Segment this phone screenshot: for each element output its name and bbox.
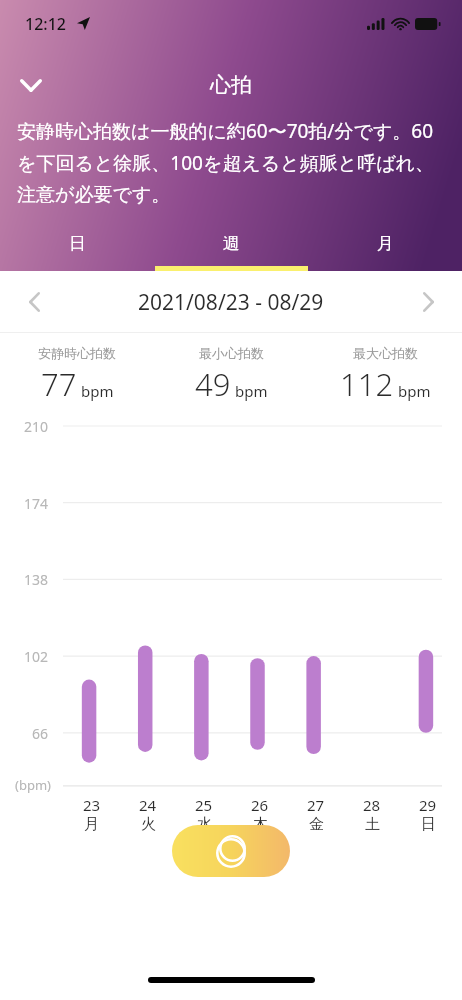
button[interactable]: Next week [406, 280, 450, 324]
button[interactable]: 日 [0, 228, 154, 271]
staticText: 金 [309, 815, 324, 834]
staticText: 月 [84, 815, 99, 834]
staticText: bpm [398, 381, 431, 401]
staticText: 最大心拍数 [353, 345, 418, 361]
staticText: 土 [365, 815, 380, 834]
staticText: 77 [41, 363, 77, 405]
staticText: 火 [141, 815, 156, 834]
button[interactable]: Collapse [8, 62, 54, 108]
staticText: 102 [0, 647, 48, 666]
staticText: 月 [377, 233, 394, 254]
staticText: 日 [421, 815, 436, 834]
staticText: 29 [419, 795, 437, 815]
staticText: 心拍 [210, 72, 252, 98]
staticText: 週 [223, 233, 240, 254]
staticText: 138 [0, 570, 48, 589]
staticText: 23 [83, 795, 101, 815]
staticText: 28 [363, 795, 381, 815]
staticText: 49 [195, 363, 231, 405]
staticText: 66 [0, 724, 48, 743]
staticText: bpm [81, 381, 114, 401]
button[interactable]: Previous week [12, 280, 56, 324]
button[interactable]: 月 [308, 228, 462, 271]
staticText: 安静時心拍数 [38, 345, 116, 361]
staticText: 12:12 [25, 13, 66, 35]
staticText: 112 [340, 363, 394, 405]
staticText: (bpm) [15, 776, 51, 794]
button[interactable]: 週 [154, 228, 308, 271]
staticText: 27 [307, 795, 325, 815]
staticText: bpm [235, 381, 268, 401]
staticText: 木 [253, 815, 268, 834]
staticText: 24 [139, 795, 157, 815]
staticText: 26 [251, 795, 269, 815]
staticText: 水 [197, 815, 212, 834]
staticText: 2021/08/23 - 08/29 [138, 288, 324, 317]
staticText: 210 [0, 417, 48, 436]
staticText: 最小心拍数 [199, 345, 264, 361]
staticText: 25 [195, 795, 213, 815]
staticText: 174 [0, 494, 48, 513]
staticText: 日 [69, 233, 86, 254]
button[interactable]: Measure heart rate [172, 825, 290, 877]
staticText: 安静時心拍数は一般的に約60〜70拍/分です。60を下回ると徐脈、100を超える… [17, 118, 445, 207]
